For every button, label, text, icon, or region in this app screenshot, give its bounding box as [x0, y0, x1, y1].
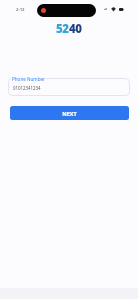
staticText: 2:12 — [16, 6, 25, 12]
staticText: NEXT — [62, 110, 77, 117]
staticText: 01012341234 — [13, 85, 41, 91]
button[interactable]: NEXT — [10, 106, 129, 120]
staticText: 40 — [69, 21, 82, 37]
button[interactable]: 01012341234 — [8, 78, 130, 96]
staticText: 52 — [56, 21, 69, 37]
staticText: Phone Number — [12, 76, 45, 82]
